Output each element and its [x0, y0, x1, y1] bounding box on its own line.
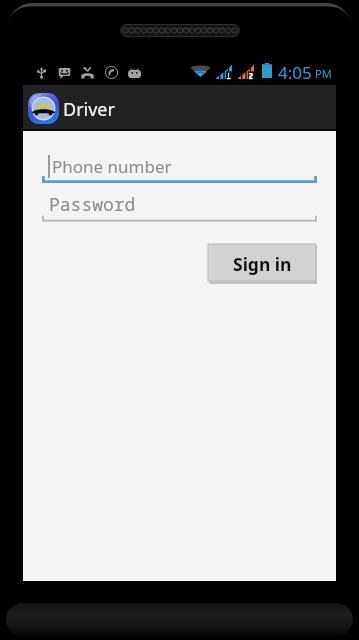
staticText: Driver	[63, 97, 115, 122]
staticText: Password	[49, 192, 136, 217]
staticText: Sign in	[233, 252, 292, 276]
staticText: Phone number	[52, 155, 172, 178]
button[interactable]: Sign in	[208, 244, 317, 283]
staticText: PM	[315, 66, 332, 81]
button[interactable]: Password	[42, 190, 317, 222]
staticText: 4:05	[278, 61, 312, 84]
button[interactable]: Phone number	[42, 151, 317, 183]
other: App icon	[28, 93, 59, 124]
button[interactable]: App icon	[23, 85, 336, 131]
